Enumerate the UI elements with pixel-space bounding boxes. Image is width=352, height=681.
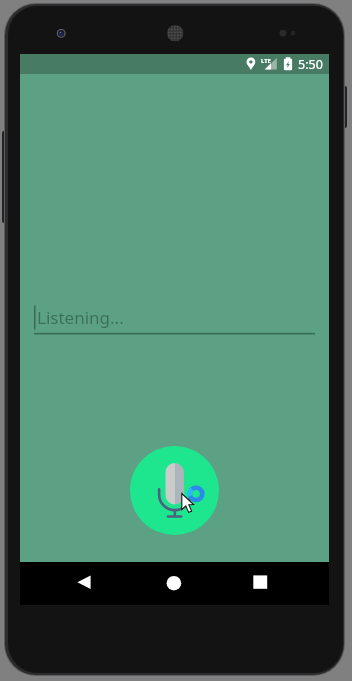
button[interactable]: Home (159, 569, 189, 599)
staticText: Listening... (37, 306, 124, 329)
button[interactable]: Listening... (34, 304, 315, 336)
staticText: 5:50 (298, 56, 323, 73)
button[interactable]: Recent apps (245, 569, 275, 599)
button[interactable]: Back (67, 569, 97, 599)
button[interactable]: Start voice input (130, 446, 219, 535)
staticText: LTE (261, 57, 271, 65)
